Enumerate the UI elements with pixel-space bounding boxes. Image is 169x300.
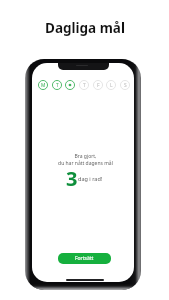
- button[interactable]: Måndag: [38, 80, 48, 90]
- staticText: M: [41, 82, 46, 89]
- staticText: 3: [66, 165, 78, 192]
- button[interactable]: Tisdag: [52, 80, 62, 90]
- button[interactable]: Söndag: [120, 80, 130, 90]
- button[interactable]: Fortsätt: [58, 253, 111, 264]
- staticText: Bra gjort, du har nått dagens mål: [58, 153, 113, 167]
- staticText: L: [110, 82, 113, 89]
- staticText: dag i rad!: [78, 175, 103, 182]
- staticText: T: [56, 82, 59, 89]
- button[interactable]: Fredag: [93, 80, 103, 90]
- staticText: T: [83, 82, 86, 89]
- staticText: S: [124, 82, 127, 89]
- staticText: Dagliga mål: [45, 19, 125, 37]
- button[interactable]: Onsdag: [65, 80, 75, 90]
- button[interactable]: Lördag: [106, 80, 116, 90]
- staticText: Fortsätt: [75, 255, 94, 262]
- button[interactable]: Torsdag: [79, 80, 89, 90]
- staticText: F: [97, 82, 100, 89]
